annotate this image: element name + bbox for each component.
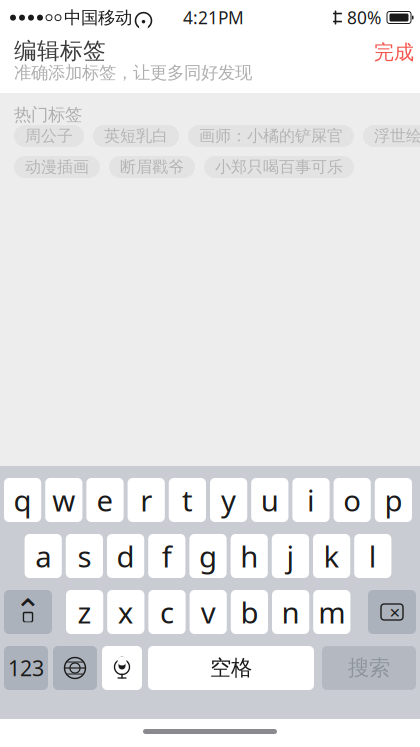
button[interactable]: f bbox=[148, 534, 185, 578]
button[interactable]: 空格 bbox=[148, 646, 314, 690]
button[interactable]: h bbox=[231, 534, 268, 578]
button[interactable]: Shift bbox=[4, 590, 52, 634]
button[interactable]: v bbox=[190, 590, 227, 634]
button[interactable]: 动漫插画 bbox=[14, 156, 100, 178]
button[interactable]: o bbox=[334, 478, 371, 522]
staticText: x bbox=[118, 592, 134, 631]
staticText: e bbox=[96, 480, 113, 519]
button[interactable]: g bbox=[189, 534, 227, 578]
button[interactable]: m bbox=[313, 590, 350, 634]
staticText: o bbox=[343, 480, 361, 519]
staticText: j bbox=[286, 536, 294, 575]
button[interactable]: b bbox=[231, 590, 268, 634]
button[interactable]: l bbox=[354, 534, 391, 578]
staticText: k bbox=[324, 536, 340, 575]
staticText: 画师：小橘的铲屎官 bbox=[199, 126, 343, 146]
staticText: l bbox=[369, 536, 377, 575]
button[interactable]: 小郑只喝百事可乐 bbox=[204, 156, 354, 178]
staticText: r bbox=[140, 480, 152, 519]
staticText: t bbox=[182, 480, 193, 519]
staticText: y bbox=[221, 480, 236, 519]
button[interactable]: s bbox=[66, 534, 103, 578]
staticText: ⌃ bbox=[14, 593, 41, 629]
button[interactable]: u bbox=[251, 478, 288, 522]
staticText: f bbox=[162, 536, 172, 575]
staticText: s bbox=[77, 536, 91, 575]
staticText: 断眉戳爷 bbox=[120, 157, 184, 177]
button[interactable]: 浮世绘 bbox=[363, 125, 420, 147]
staticText: b bbox=[240, 592, 258, 631]
button[interactable]: c bbox=[148, 590, 186, 634]
button[interactable]: Next keyboard bbox=[53, 646, 97, 690]
staticText: 周公子 bbox=[25, 126, 73, 146]
button[interactable]: j bbox=[272, 534, 309, 578]
button[interactable]: 123 bbox=[4, 646, 48, 690]
staticText: 空格 bbox=[210, 655, 252, 681]
button[interactable]: 断眉戳爷 bbox=[109, 156, 195, 178]
staticText: 英短乳白 bbox=[104, 126, 168, 146]
staticText: p bbox=[384, 480, 402, 519]
staticText: m bbox=[318, 592, 345, 631]
staticText: 热门标签 bbox=[14, 104, 82, 125]
staticText: d bbox=[117, 536, 135, 575]
staticText: z bbox=[78, 592, 92, 631]
button[interactable]: z bbox=[66, 590, 103, 634]
button[interactable]: q bbox=[4, 478, 41, 522]
button[interactable]: 完成 bbox=[362, 31, 420, 74]
staticText: 4:21PM bbox=[183, 6, 244, 29]
button[interactable]: 画师：小橘的铲屎官 bbox=[188, 125, 354, 147]
staticText: 浮世绘 bbox=[374, 126, 420, 146]
staticText: 80% bbox=[347, 6, 381, 29]
staticText: 123 bbox=[8, 654, 44, 682]
staticText: 准确添加标签，让更多同好发现 bbox=[14, 62, 252, 83]
button[interactable]: a bbox=[25, 534, 62, 578]
button[interactable]: r bbox=[128, 478, 165, 522]
button[interactable]: k bbox=[313, 534, 350, 578]
staticText: i bbox=[307, 480, 315, 519]
staticText: u bbox=[261, 480, 279, 519]
button[interactable]: 英短乳白 bbox=[93, 125, 179, 147]
staticText: 完成 bbox=[374, 40, 414, 65]
staticText: c bbox=[160, 592, 174, 631]
button[interactable]: d bbox=[107, 534, 144, 578]
button[interactable]: 搜索 bbox=[322, 646, 416, 690]
button[interactable]: x bbox=[107, 590, 144, 634]
button[interactable]: p bbox=[375, 478, 412, 522]
staticText: 搜索 bbox=[348, 655, 390, 681]
button[interactable]: 周公子 bbox=[14, 125, 84, 147]
staticText: q bbox=[14, 480, 32, 519]
staticText: h bbox=[240, 536, 258, 575]
staticText: g bbox=[199, 536, 217, 575]
button[interactable]: i bbox=[292, 478, 330, 522]
staticText: 编辑标签 bbox=[14, 37, 106, 65]
staticText: n bbox=[282, 592, 300, 631]
staticText: 小郑只喝百事可乐 bbox=[215, 157, 343, 177]
staticText: a bbox=[35, 536, 51, 575]
button[interactable]: n bbox=[272, 590, 309, 634]
staticText: 中国移动 bbox=[64, 7, 132, 28]
button[interactable]: y bbox=[210, 478, 247, 522]
button[interactable]: t bbox=[169, 478, 206, 522]
button[interactable]: Dictation bbox=[102, 646, 142, 690]
staticText: w bbox=[52, 480, 75, 519]
staticText: × bbox=[389, 600, 400, 624]
button[interactable]: w bbox=[45, 478, 82, 522]
staticText: 动漫插画 bbox=[25, 157, 89, 177]
button[interactable]: Delete bbox=[368, 590, 416, 634]
staticText: v bbox=[201, 592, 216, 631]
button[interactable]: e bbox=[86, 478, 124, 522]
